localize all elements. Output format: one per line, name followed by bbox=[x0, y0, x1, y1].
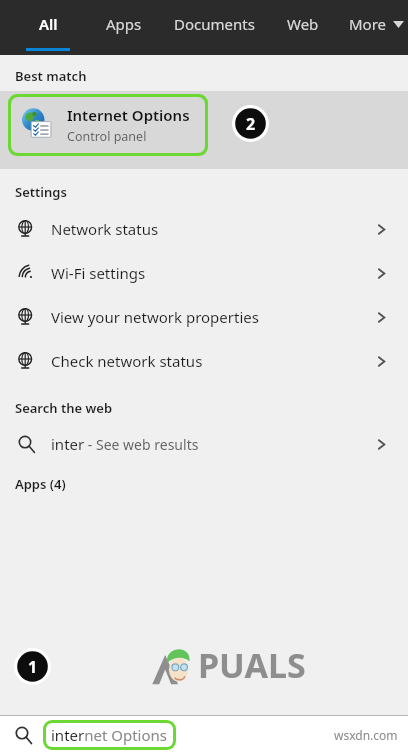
staticText: Control panel bbox=[67, 128, 147, 145]
staticText: 2 bbox=[246, 113, 256, 135]
button[interactable]: Internet Options bbox=[11, 97, 205, 153]
button[interactable]: Web bbox=[287, 14, 319, 48]
button[interactable]: More bbox=[349, 14, 404, 34]
button[interactable]: inter - See web results bbox=[0, 423, 408, 465]
staticText: internet Options bbox=[51, 725, 168, 745]
staticText: Check network status bbox=[51, 351, 203, 371]
button[interactable]: Apps bbox=[106, 14, 142, 48]
staticText: Apps bbox=[106, 14, 142, 34]
button[interactable]: View your network properties bbox=[0, 295, 408, 339]
staticText: Internet Options bbox=[67, 105, 190, 125]
staticText: wsxdn.com bbox=[334, 727, 398, 743]
staticText: Wi-Fi settings bbox=[51, 263, 146, 283]
staticText: Settings bbox=[15, 183, 67, 201]
button[interactable]: Wi-Fi settings bbox=[0, 251, 408, 295]
staticText: Network status bbox=[51, 219, 159, 239]
staticText: All bbox=[39, 14, 58, 34]
staticText: PUALS bbox=[198, 642, 306, 688]
button[interactable]: Documents bbox=[174, 14, 255, 48]
staticText: View your network properties bbox=[51, 307, 259, 327]
staticText: Best match bbox=[15, 67, 87, 85]
staticText: Search the web bbox=[15, 399, 113, 417]
button[interactable]: Check network status bbox=[0, 339, 408, 383]
staticText: Documents bbox=[174, 14, 255, 34]
staticText: Web bbox=[287, 14, 319, 34]
staticText: inter - See web results bbox=[51, 434, 199, 454]
staticText: 1 bbox=[28, 656, 38, 678]
staticText: Apps (4) bbox=[15, 475, 66, 493]
button[interactable]: All bbox=[26, 14, 70, 51]
staticText: More bbox=[349, 14, 387, 34]
button[interactable]: Network status bbox=[0, 207, 408, 251]
button[interactable]: internet Options bbox=[0, 715, 408, 755]
